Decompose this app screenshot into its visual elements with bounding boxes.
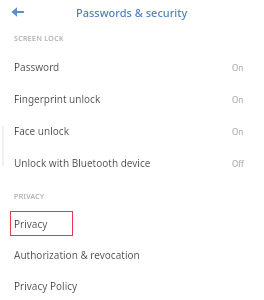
staticText: On — [232, 126, 244, 137]
button[interactable]: Back — [5, 0, 29, 24]
button[interactable]: Privacy — [10, 211, 73, 236]
button[interactable]: Authorization & revocation — [0, 239, 264, 271]
staticText: On — [232, 62, 244, 73]
staticText: Privacy — [14, 217, 48, 231]
staticText: Passwords & security — [76, 5, 188, 20]
button[interactable]: Unlock with Bluetooth device — [0, 147, 264, 179]
button[interactable]: Password — [0, 51, 264, 83]
button[interactable]: Privacy Policy — [0, 271, 264, 300]
staticText: Off — [232, 158, 244, 169]
staticText: Privacy Policy — [14, 279, 244, 293]
staticText: Fingerprint unlock — [14, 92, 232, 106]
staticText: On — [232, 94, 244, 105]
staticText: Unlock with Bluetooth device — [14, 156, 232, 170]
staticText: PRIVACY — [14, 192, 45, 202]
button[interactable]: Face unlock — [0, 115, 264, 147]
button[interactable]: Fingerprint unlock — [0, 83, 264, 115]
staticText: SCREEN LOCK — [14, 34, 64, 44]
staticText: Authorization & revocation — [14, 248, 244, 262]
staticText: Face unlock — [14, 124, 232, 138]
staticText: Password — [14, 60, 232, 74]
